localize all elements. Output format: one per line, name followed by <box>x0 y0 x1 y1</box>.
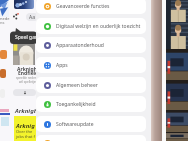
staticText: wil spelletjes <box>19 80 37 84</box>
staticText: Softwareupdate <box>56 121 94 128</box>
button[interactable]: Tips en handleiding <box>36 135 146 141</box>
button[interactable]: Geavanceerde functies <box>36 0 146 14</box>
button[interactable]: Softwareupdate <box>36 116 146 132</box>
button[interactable]: Algemeen beheer <box>36 77 146 93</box>
staticText: Arknig <box>16 122 35 130</box>
staticText: Apparaatonderhoud <box>56 42 104 49</box>
staticText: Arknight <box>15 107 40 115</box>
button[interactable]: Install <box>13 89 36 96</box>
button[interactable]: Aa <box>26 13 38 21</box>
staticText: Aa <box>29 14 36 21</box>
staticText: Digitaal welzijn en ouderlijk toezicht <box>56 23 141 30</box>
staticText: Algemeen beheer <box>56 82 98 89</box>
staticText: Apps <box>56 62 68 69</box>
staticText: Speel gam <box>15 34 40 41</box>
staticText: ns <box>0 20 5 25</box>
button[interactable]: Apps <box>36 57 146 73</box>
staticText: speelde nederland <box>16 76 43 80</box>
staticText: Endfield <box>18 70 39 77</box>
staticText: jobs that f <box>16 134 35 139</box>
staticText: Arknights <box>17 66 42 73</box>
staticText: Geavanceerde functies <box>56 3 110 10</box>
button[interactable]: Toegankelijkheid <box>36 96 146 112</box>
staticText: Over the <box>16 129 33 134</box>
staticText: nede <box>0 16 10 21</box>
button[interactable]: Share <box>12 13 19 20</box>
button[interactable]: Apparaatonderhoud <box>36 37 146 53</box>
button[interactable]: Digitaal welzijn en ouderlijk toezicht <box>36 18 146 34</box>
staticText: Toegankelijkheid <box>56 101 96 108</box>
